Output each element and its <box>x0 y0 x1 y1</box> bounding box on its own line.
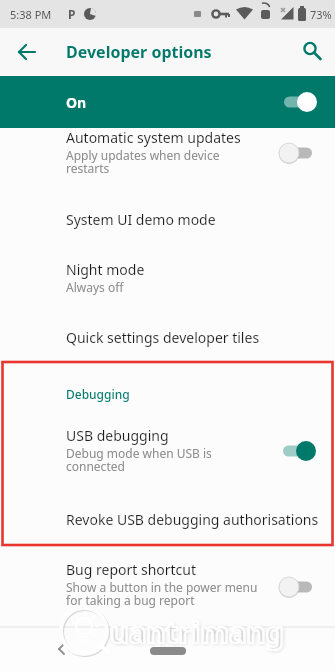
staticText: Debug mode when USB is connected <box>66 445 266 475</box>
button[interactable]: Night mode <box>0 246 335 302</box>
staticText: USB debugging <box>66 426 169 445</box>
staticText: On <box>66 93 87 112</box>
button[interactable] <box>281 440 315 462</box>
staticText: Always off <box>66 279 124 295</box>
staticText: Apply updates when device restarts <box>66 147 266 177</box>
staticText: Revoke USB debugging authorisations <box>66 510 319 529</box>
button[interactable]: System UI demo mode <box>0 196 335 242</box>
staticText: Debugging <box>66 386 130 402</box>
button[interactable] <box>282 91 316 113</box>
button[interactable]: On <box>0 76 335 128</box>
staticText: P <box>68 6 76 22</box>
staticText: 73% <box>310 7 332 22</box>
button[interactable] <box>46 640 76 670</box>
staticText: uantrimang <box>110 612 285 651</box>
staticText: Night mode <box>66 260 145 279</box>
button[interactable] <box>280 576 314 598</box>
staticText: System UI demo mode <box>66 210 216 229</box>
button[interactable] <box>150 647 186 655</box>
button[interactable]: Automatic system updates <box>0 128 335 190</box>
staticText: Quick settings developer tiles <box>66 328 260 347</box>
button[interactable] <box>11 36 43 68</box>
button[interactable]: USB debugging <box>0 424 335 486</box>
staticText: Developer options <box>66 41 212 63</box>
button[interactable]: Bug report shortcut <box>0 558 335 620</box>
staticText: Automatic system updates <box>66 128 241 147</box>
button[interactable]: Revoke USB debugging authorisations <box>0 496 335 542</box>
staticText: uantrimang <box>110 612 285 651</box>
staticText: Show a button in the power menu for taki… <box>66 579 286 609</box>
button[interactable] <box>280 142 314 164</box>
staticText: 5:38 PM <box>10 7 52 22</box>
staticText: Bug report shortcut <box>66 560 197 579</box>
button[interactable] <box>296 34 330 68</box>
button[interactable]: Quick settings developer tiles <box>0 314 335 360</box>
